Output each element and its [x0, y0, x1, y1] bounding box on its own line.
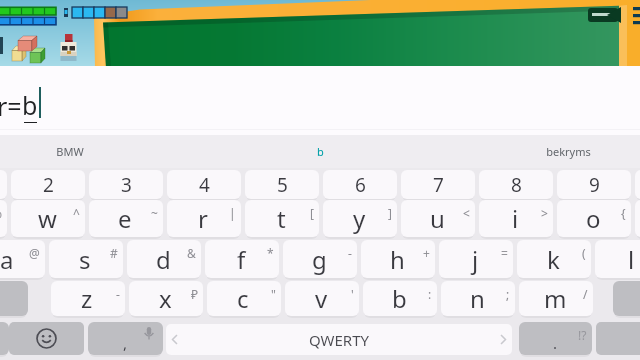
staticText: i — [512, 202, 519, 235]
staticText: : — [428, 286, 432, 302]
button[interactable]: h — [361, 240, 435, 278]
button[interactable]: o — [557, 200, 631, 237]
staticText: v — [315, 282, 328, 315]
button[interactable]: v — [285, 281, 359, 316]
staticText: a — [0, 243, 14, 276]
staticText: * — [267, 245, 274, 261]
staticText: d — [156, 243, 171, 276]
staticText: z — [81, 282, 93, 315]
staticText: , — [123, 333, 128, 353]
staticText: / — [583, 286, 588, 302]
button[interactable]: y — [323, 200, 397, 237]
button[interactable]: m — [519, 281, 593, 316]
button[interactable]: c — [207, 281, 281, 316]
staticText: b — [317, 144, 324, 159]
button[interactable]: l — [595, 240, 640, 278]
staticText: b — [22, 88, 38, 122]
staticText: w — [38, 202, 57, 235]
button[interactable]: Backspace — [613, 281, 640, 316]
button[interactable]: k — [517, 240, 591, 278]
button[interactable]: e — [89, 200, 163, 237]
button[interactable]: r — [167, 200, 241, 237]
button[interactable]: g — [283, 240, 357, 278]
button[interactable]: q — [0, 200, 7, 237]
button[interactable]: QWERTY — [166, 324, 512, 355]
staticText: | — [229, 205, 236, 221]
button[interactable]: z — [51, 281, 125, 316]
button[interactable]: bekryms — [444, 135, 640, 168]
button[interactable]: 0 — [635, 170, 640, 199]
button[interactable]: r= — [0, 66, 640, 135]
staticText: j — [472, 243, 479, 276]
button[interactable]: d — [127, 240, 201, 278]
staticText: ] — [388, 205, 392, 221]
staticText: QWERTY — [309, 330, 370, 350]
button[interactable]: u — [401, 200, 475, 237]
staticText: 2 — [43, 172, 54, 198]
staticText: & — [187, 245, 196, 261]
staticText: @ — [29, 245, 40, 261]
staticText: f — [237, 243, 246, 276]
button[interactable]: p — [635, 200, 640, 237]
staticText: e — [118, 202, 132, 235]
staticText: " — [271, 286, 276, 302]
staticText: # — [110, 245, 118, 261]
button[interactable]: 2 — [11, 170, 85, 199]
button[interactable]: 1 — [0, 170, 7, 199]
button[interactable]: b — [196, 135, 445, 168]
button[interactable]: f — [205, 240, 279, 278]
staticText: % — [0, 205, 2, 221]
button[interactable]: . — [519, 322, 592, 355]
button[interactable]: Game view — [0, 0, 640, 66]
staticText: m — [544, 282, 567, 315]
staticText: < — [463, 205, 470, 221]
staticText: l — [628, 243, 635, 276]
staticText: 3 — [121, 172, 132, 198]
staticText: ~ — [151, 205, 158, 221]
staticText: > — [541, 205, 548, 221]
button[interactable]: Emoji — [9, 322, 84, 355]
button[interactable]: a — [0, 240, 45, 278]
button[interactable]: Symbols — [0, 322, 9, 355]
button[interactable]: 3 — [89, 170, 163, 199]
staticText: + — [423, 245, 430, 261]
button[interactable]: b — [363, 281, 437, 316]
button[interactable]: 4 — [167, 170, 241, 199]
staticText: ( — [582, 245, 586, 261]
button[interactable]: n — [441, 281, 515, 316]
staticText: n — [470, 282, 485, 315]
button[interactable]: , — [88, 322, 163, 355]
staticText: x — [159, 282, 172, 315]
staticText: y — [353, 202, 366, 235]
staticText: h — [390, 243, 405, 276]
staticText: !? — [578, 327, 587, 343]
staticText: [ — [310, 205, 314, 221]
staticText: ' — [351, 286, 354, 302]
staticText: bekryms — [546, 144, 591, 159]
button[interactable]: w — [11, 200, 85, 237]
staticText: c — [237, 282, 249, 315]
button[interactable]: Enter — [596, 322, 640, 355]
button[interactable]: 8 — [479, 170, 553, 199]
button[interactable]: s — [49, 240, 123, 278]
staticText: ; — [506, 286, 510, 302]
staticText: k — [547, 243, 560, 276]
button[interactable]: x — [129, 281, 203, 316]
button[interactable]: i — [479, 200, 553, 237]
staticText: 6 — [355, 172, 366, 198]
staticText: o — [586, 202, 601, 235]
button[interactable]: Shift — [0, 281, 28, 316]
button[interactable]: j — [439, 240, 513, 278]
staticText: r= — [0, 89, 22, 123]
button[interactable]: 9 — [557, 170, 631, 199]
staticText: u — [430, 202, 445, 235]
staticText: s — [79, 243, 91, 276]
button[interactable]: 5 — [245, 170, 319, 199]
button[interactable]: 6 — [323, 170, 397, 199]
button[interactable]: t — [245, 200, 319, 237]
staticText: r — [198, 202, 208, 235]
button[interactable]: BMW — [0, 135, 194, 168]
staticText: - — [348, 245, 352, 261]
button[interactable]: 7 — [401, 170, 475, 199]
staticText: t — [277, 202, 286, 235]
